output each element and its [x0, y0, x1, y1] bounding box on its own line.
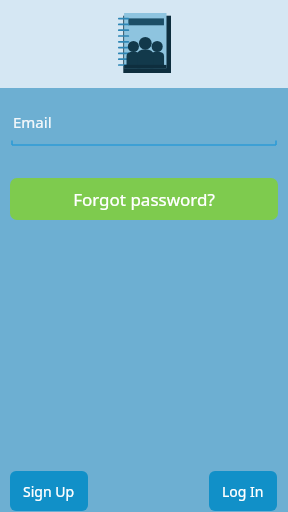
button[interactable]: Sign Up: [10, 471, 88, 511]
button[interactable]: Email: [0, 88, 288, 146]
staticText: Forgot password?: [73, 188, 215, 211]
staticText: Email: [13, 112, 52, 132]
staticText: Log In: [222, 482, 264, 501]
staticText: Sign Up: [23, 482, 75, 501]
other: ContactsWare logo: [118, 13, 171, 73]
button[interactable]: Forgot password?: [10, 178, 278, 220]
button[interactable]: Log In: [209, 471, 277, 511]
